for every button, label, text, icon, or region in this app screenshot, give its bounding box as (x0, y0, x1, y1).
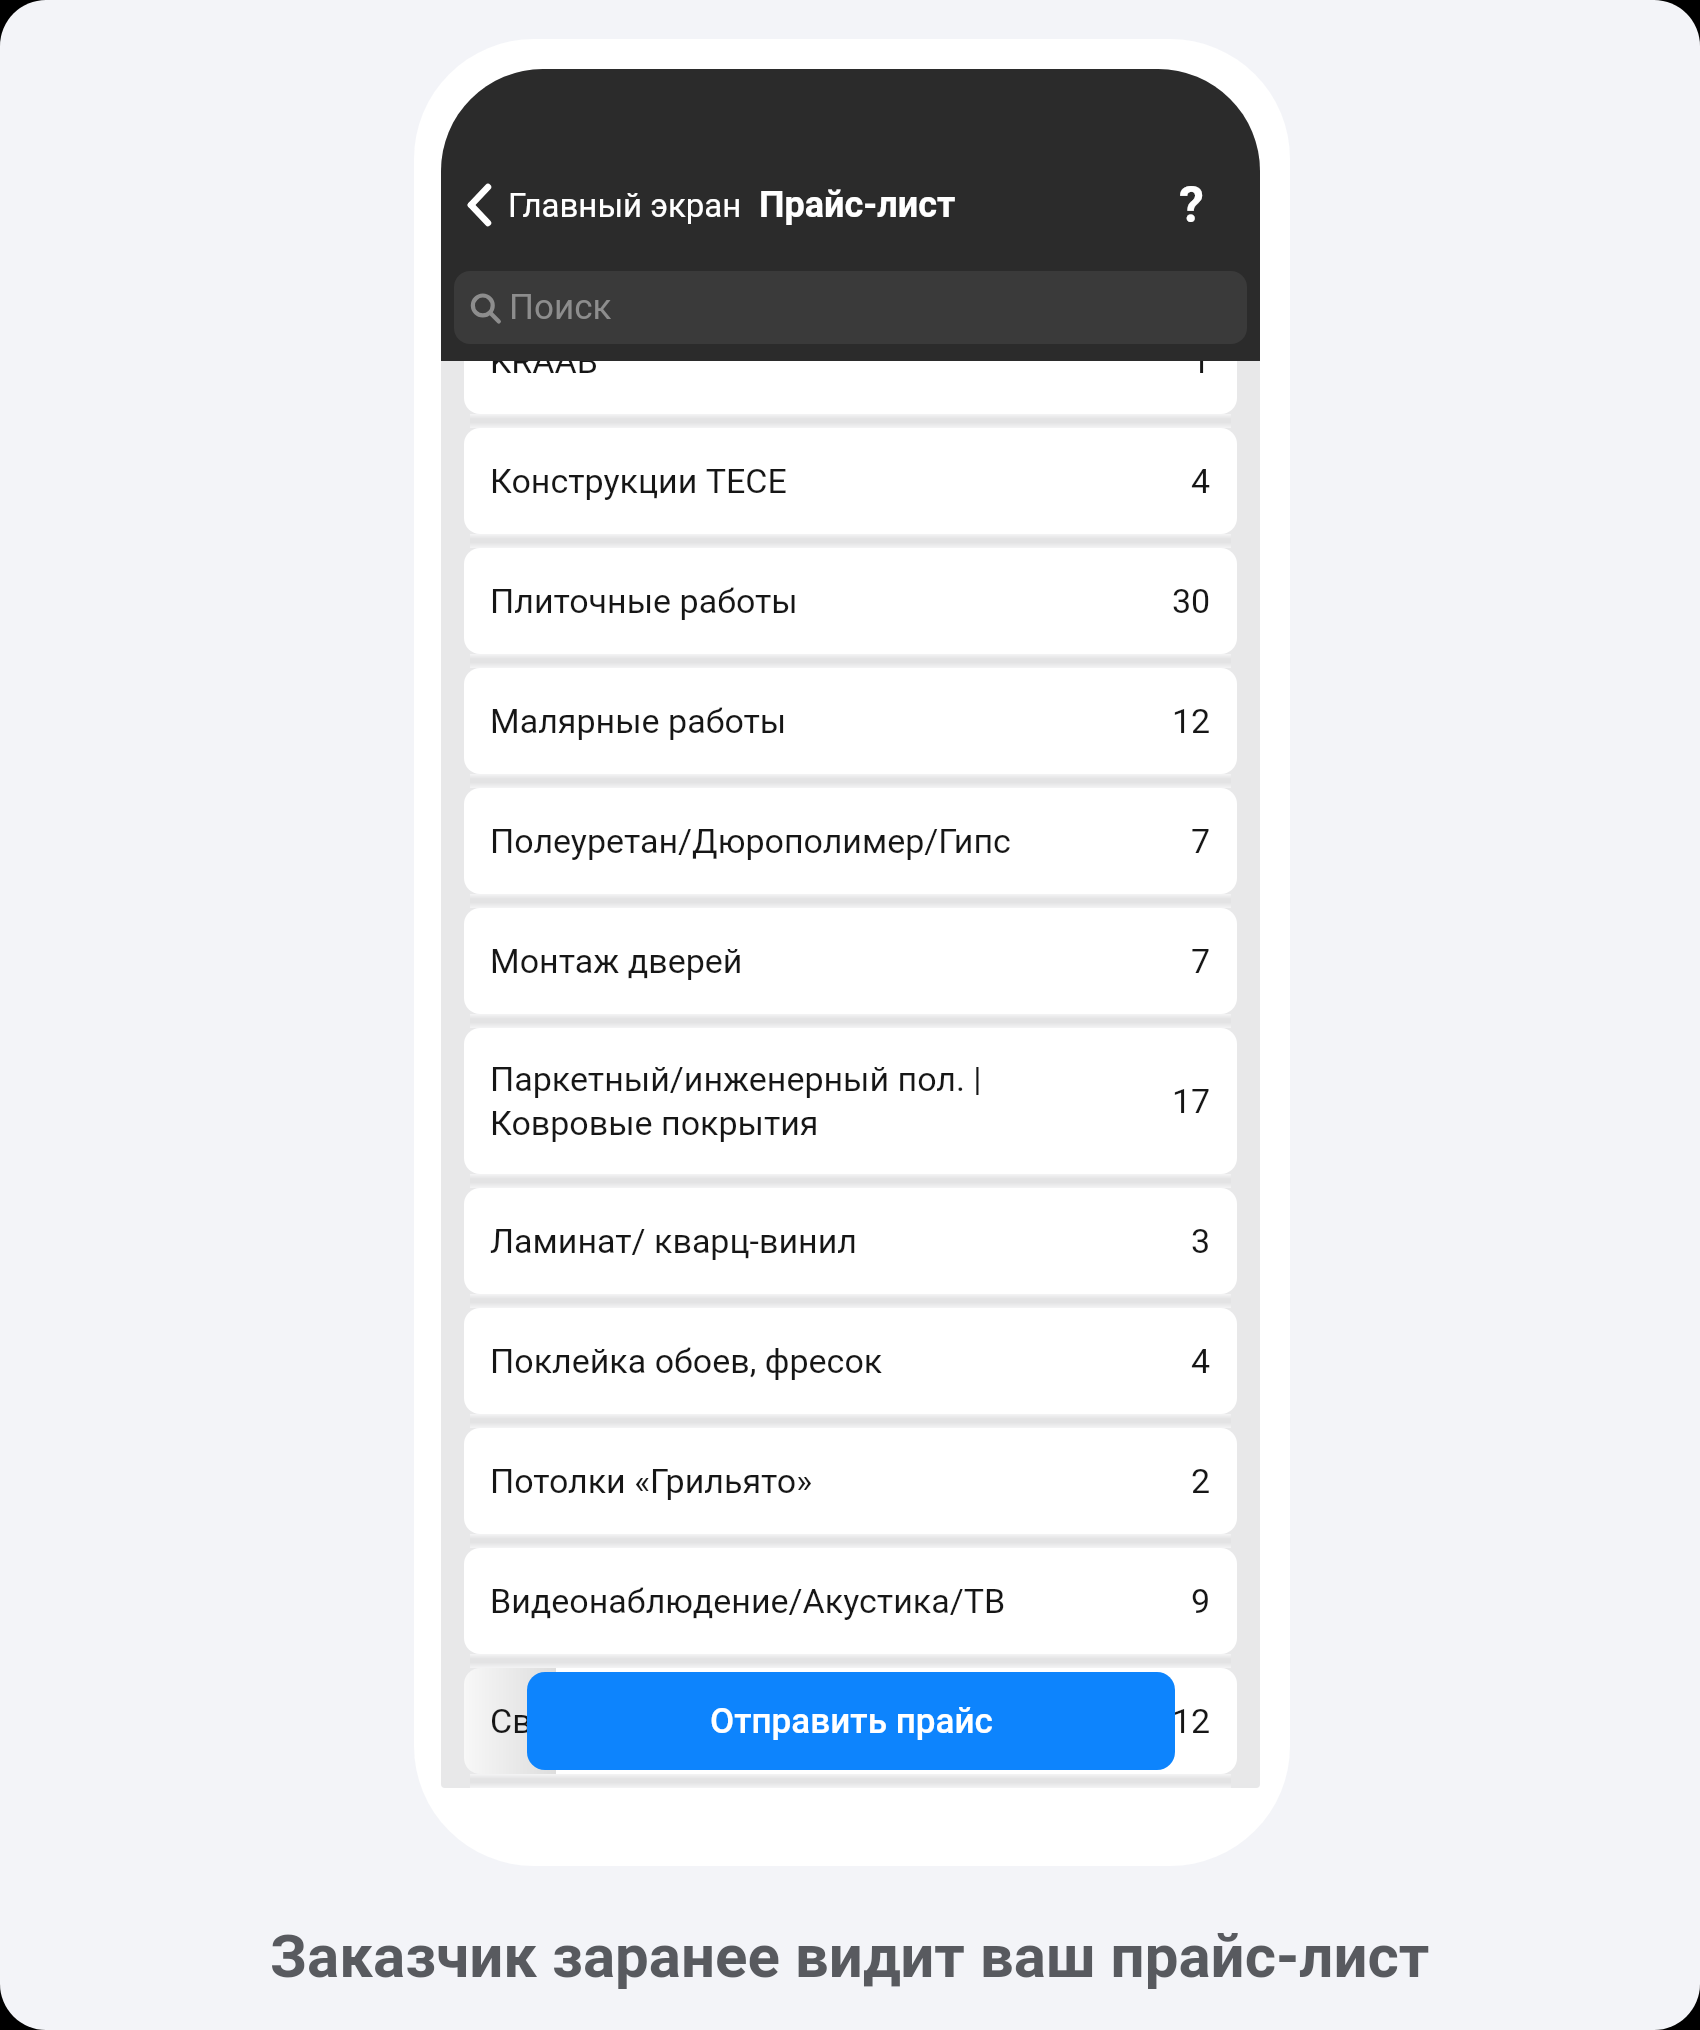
staticText: 3 (1191, 1221, 1211, 1261)
staticText: Малярные работы (490, 701, 1172, 741)
button[interactable]: Видеонаблюдение/Акустика/ТВ (464, 1548, 1237, 1654)
staticText: KRAAB (490, 341, 1191, 381)
staticText: 4 (1191, 461, 1211, 501)
staticText: Поклейка обоев, фресок (490, 1341, 1191, 1381)
button[interactable]: Конструкции TECE (464, 428, 1237, 534)
staticText: Полеуретан/Дюрополимер/Гипс (490, 821, 1191, 861)
staticText: 12 (1172, 1701, 1211, 1741)
staticText: Ламинат/ кварц-винил (490, 1221, 1191, 1261)
button[interactable]: Отправить прайс (527, 1672, 1175, 1770)
button[interactable]: Плиточные работы (464, 548, 1237, 654)
staticText: 7 (1191, 821, 1211, 861)
button[interactable]: KRAAB (464, 308, 1237, 414)
staticText: Поиск (509, 287, 612, 328)
button[interactable]: Поиск (454, 271, 1247, 344)
staticText: Потолки «Грильято» (490, 1461, 1191, 1501)
button[interactable]: Help (1157, 174, 1225, 236)
button[interactable]: Поклейка обоев, фресок (464, 1308, 1237, 1414)
staticText: Заказчик заранее видит ваш прайс-лист (270, 1921, 1430, 1991)
staticText: Паркетный/инженерный пол. | Ковровые пок… (490, 1059, 1172, 1143)
button[interactable]: Малярные работы (464, 668, 1237, 774)
button[interactable]: Монтаж дверей (464, 908, 1237, 1014)
staticText: 1 (1191, 341, 1211, 381)
button[interactable]: Ламинат/ кварц-винил (464, 1188, 1237, 1294)
staticText: 9 (1191, 1581, 1211, 1621)
staticText: 12 (1172, 701, 1211, 741)
button[interactable]: Потолки «Грильято» (464, 1428, 1237, 1534)
button[interactable]: Главный экран (462, 180, 748, 230)
button[interactable]: Полеуретан/Дюрополимер/Гипс (464, 788, 1237, 894)
staticText: 2 (1191, 1461, 1211, 1501)
staticText: Плиточные работы (490, 581, 1172, 621)
staticText: 7 (1191, 941, 1211, 981)
staticText: ? (1179, 176, 1204, 235)
staticText: 30 (1172, 581, 1211, 621)
button[interactable]: Светильники (464, 1668, 1237, 1774)
staticText: Прайс-лист (759, 184, 956, 226)
staticText: Отправить прайс (710, 1701, 993, 1742)
staticText: Монтаж дверей (490, 941, 1191, 981)
staticText: Светильники (490, 1701, 1172, 1741)
staticText: 4 (1191, 1341, 1211, 1381)
staticText: 17 (1172, 1081, 1211, 1121)
staticText: Конструкции TECE (490, 461, 1191, 501)
staticText: Главный экран (508, 186, 742, 225)
staticText: Видеонаблюдение/Акустика/ТВ (490, 1581, 1191, 1621)
button[interactable]: Паркетный/инженерный пол. | Ковровые пок… (464, 1028, 1237, 1174)
